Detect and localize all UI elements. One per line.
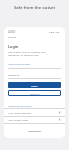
staticText: Login (31, 84, 38, 87)
staticText: LOGO (8, 30, 16, 34)
staticText: Login (8, 44, 19, 49)
staticText: Username/number (8, 62, 31, 65)
button[interactable]: Help • DE (49, 30, 60, 33)
staticText: Log in with your ID number and password,… (8, 50, 46, 56)
button[interactable]: Register (8, 90, 61, 96)
staticText: Your login methods (8, 111, 32, 114)
staticText: Register (30, 92, 40, 95)
button[interactable]: Your login methods (4, 109, 65, 116)
button[interactable]: Password forgotten? (8, 104, 33, 107)
staticText: Service (8, 35, 16, 38)
staticText: Safe from the outset (14, 5, 56, 11)
staticText: Your access code (8, 118, 28, 121)
staticText: Password (8, 73, 20, 76)
button[interactable]: Login (8, 82, 61, 88)
button[interactable]: Your access code (4, 116, 65, 123)
